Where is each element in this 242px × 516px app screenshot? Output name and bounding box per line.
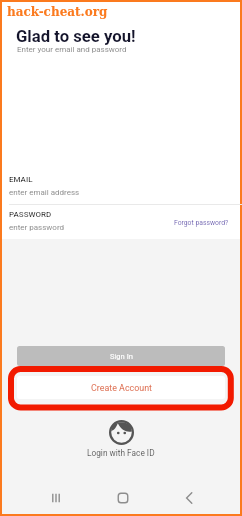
staticText: PASSWORD [9,210,52,219]
staticText: hack-cheat.org [7,5,108,19]
staticText: Forgot password? [174,219,229,227]
button[interactable]: Create Account [17,376,225,399]
button[interactable]: Home [99,482,147,514]
staticText: Login with Face ID [87,448,155,458]
button[interactable]: Back [166,482,214,514]
button[interactable]: EMAIL [2,172,240,205]
staticText: Enter your email and password [17,45,127,54]
button[interactable]: Recent apps [32,482,80,514]
staticText: enter email address [9,188,80,197]
staticText: Create Account [91,383,152,393]
button[interactable]: PASSWORD [2,207,240,239]
staticText: EMAIL [9,175,33,184]
staticText: Sign In [110,352,133,361]
button[interactable]: Forgot password? [172,217,231,229]
staticText: Glad to see you! [16,27,136,47]
button[interactable]: Sign In [17,346,225,366]
staticText: enter password [9,223,65,232]
button[interactable]: Login with Face ID [2,420,240,458]
